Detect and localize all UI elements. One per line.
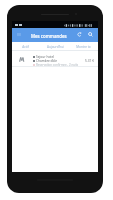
button[interactable]: Search (87, 31, 94, 38)
staticText: Reservation confirmee - 2 nuits (36, 63, 79, 67)
button[interactable]: Refresh (76, 31, 83, 38)
staticText: Aujourd'hui (47, 45, 64, 49)
button[interactable]: Montre to (74, 44, 93, 50)
staticText: Chambre dble (36, 59, 58, 63)
staticText: Montre to (76, 45, 91, 49)
staticText: Mes commandes (31, 33, 67, 39)
button[interactable]: Actif (20, 44, 31, 50)
button[interactable]: Menu (15, 31, 22, 38)
button[interactable]: Aujourd'hui (45, 44, 66, 50)
staticText: Actif (22, 45, 29, 49)
staticText: 5.31 € (85, 59, 94, 63)
staticText: Sejour hotel (36, 55, 55, 59)
button[interactable]: Sejour hotel (12, 51, 98, 67)
